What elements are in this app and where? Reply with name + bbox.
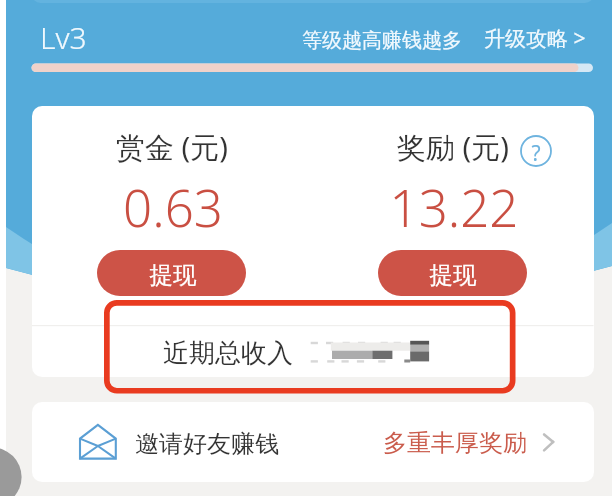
button[interactable]: 升级攻略 > <box>478 19 594 55</box>
button[interactable]: 邀请好友赚钱 <box>32 402 594 482</box>
staticText: ? <box>524 139 548 168</box>
button[interactable]: 提现 <box>97 250 246 296</box>
staticText: 邀请好友赚钱 <box>135 429 295 459</box>
staticText: 提现 <box>143 260 203 290</box>
button[interactable]: 奖励说明 <box>518 133 554 169</box>
staticText: 多重丰厚奖励 <box>383 428 543 458</box>
staticText: 等级越高赚钱越多 <box>302 28 502 53</box>
staticText: 0.63 <box>103 172 243 241</box>
staticText: 奖励 (元) <box>373 127 533 167</box>
staticText: 赏金 (元) <box>92 127 252 167</box>
staticText: 升级攻略 > <box>484 24 594 53</box>
staticText: 近期总收入 <box>163 337 303 370</box>
button[interactable]: 提现 <box>378 250 527 296</box>
button[interactable]: 近期总收入 <box>32 326 594 376</box>
staticText: 13.22 <box>374 172 534 241</box>
staticText: Lv3 <box>40 17 160 58</box>
staticText: 提现 <box>423 260 483 290</box>
